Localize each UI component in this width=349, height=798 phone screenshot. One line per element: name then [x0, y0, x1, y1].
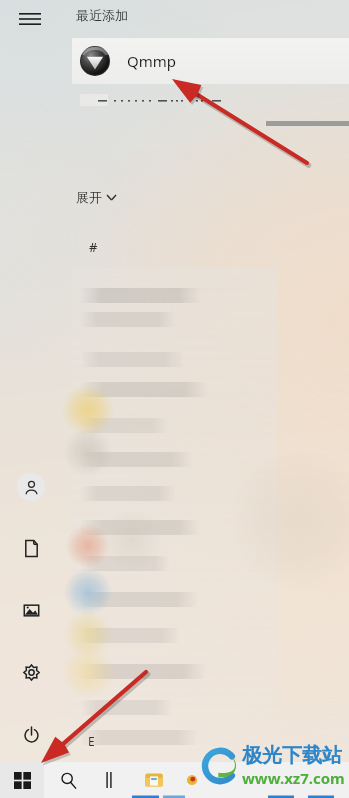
button[interactable]: Search — [44, 762, 92, 798]
button[interactable]: Settings — [10, 651, 52, 693]
button[interactable]: 最近添加 — [72, 4, 132, 26]
staticText: 极光下载站 — [242, 743, 342, 768]
button[interactable]: User account — [10, 466, 52, 508]
button[interactable]: Qmmp — [72, 38, 349, 84]
button[interactable]: Power — [10, 713, 52, 755]
staticText: www.xz7.com — [242, 768, 345, 788]
button[interactable]: Pictures — [10, 589, 52, 631]
staticText: E — [88, 733, 95, 749]
staticText: # — [89, 238, 98, 256]
button[interactable]: Task view — [92, 762, 126, 798]
button[interactable]: Documents — [10, 527, 52, 569]
button[interactable]: File Explorer — [134, 762, 174, 798]
staticText: 最近添加 — [76, 7, 128, 23]
button[interactable]: # — [86, 235, 101, 259]
button[interactable]: Pinned app — [174, 762, 210, 798]
button[interactable]: Menu — [8, 2, 52, 36]
button[interactable]: Start — [0, 762, 44, 798]
staticText: Qmmp — [127, 51, 176, 71]
button[interactable]: 展开 — [72, 186, 120, 208]
staticText: 展开 — [76, 189, 102, 205]
